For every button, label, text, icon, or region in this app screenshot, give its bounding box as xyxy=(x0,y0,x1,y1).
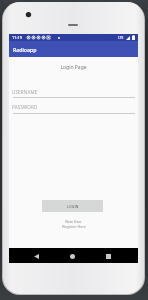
button[interactable]: New User xyxy=(9,219,138,229)
staticText: Radioapp xyxy=(13,46,37,53)
button[interactable]: LOGIN xyxy=(42,200,103,212)
button[interactable]: Home xyxy=(65,249,79,263)
button[interactable]: Recents xyxy=(101,249,115,263)
staticText: New User xyxy=(65,219,82,224)
staticText: Login Page xyxy=(9,64,138,71)
staticText: 11:19 xyxy=(12,35,22,40)
button[interactable]: Back xyxy=(29,249,43,263)
staticText: USERNAME xyxy=(12,89,38,95)
staticText: LTE xyxy=(118,36,124,40)
staticText: Register Here xyxy=(62,224,86,229)
staticText: LOGIN xyxy=(67,204,79,209)
staticText: PASSWORD xyxy=(12,104,38,110)
